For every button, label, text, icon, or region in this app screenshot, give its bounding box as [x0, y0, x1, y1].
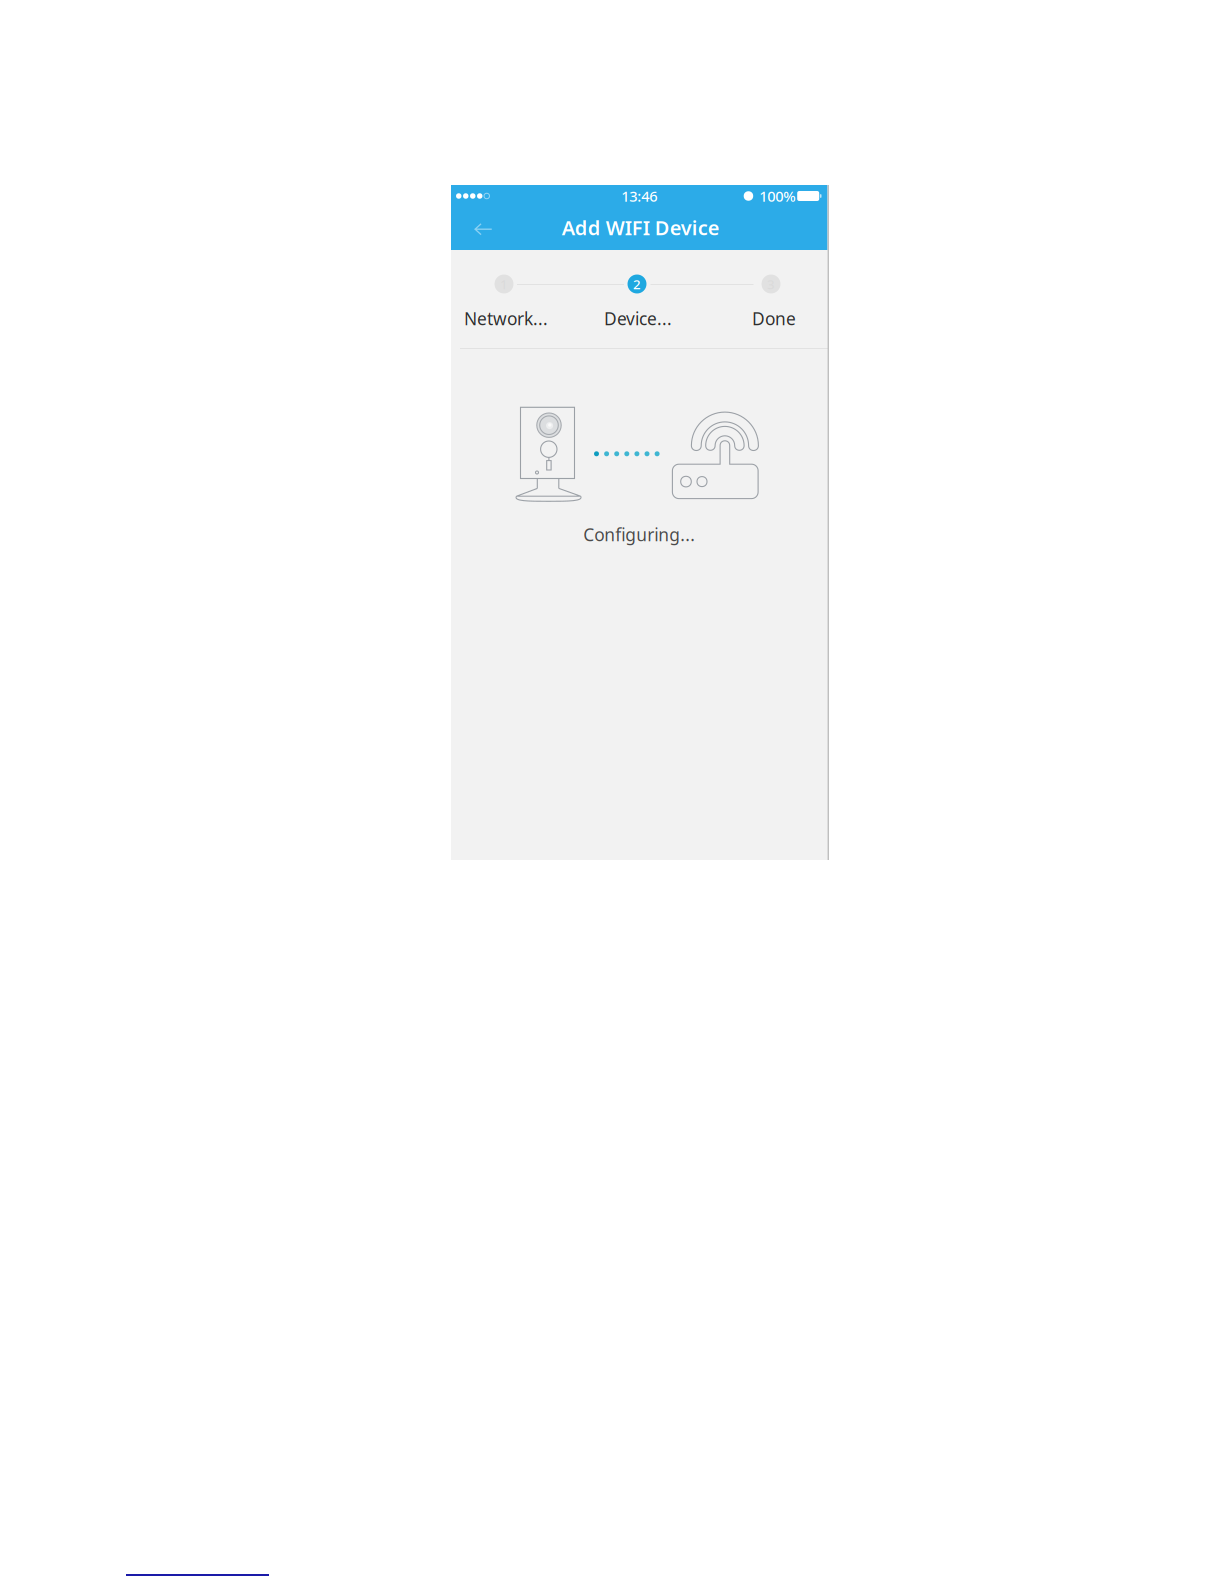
- button[interactable]: Back: [461, 209, 505, 249]
- staticText: Done: [752, 307, 796, 330]
- staticText: Configuring...: [583, 523, 695, 546]
- staticText: 13:46: [621, 186, 657, 206]
- staticText: Network...: [464, 307, 548, 330]
- staticText: 2: [633, 275, 641, 293]
- staticText: 100%: [759, 186, 795, 206]
- staticText: Add WIFI Device: [562, 214, 720, 241]
- staticText: Device...: [604, 307, 672, 330]
